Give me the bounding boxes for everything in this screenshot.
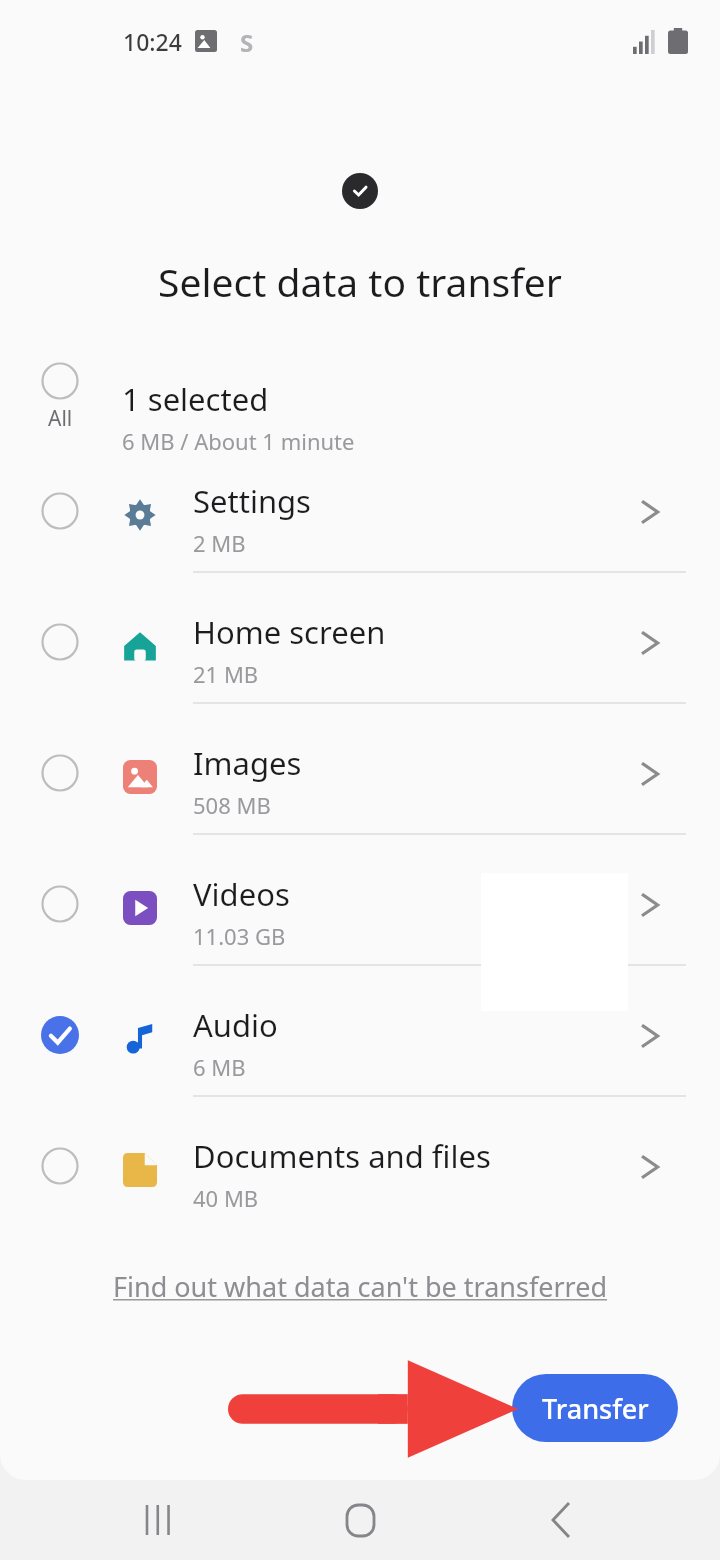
- staticText: Settings: [193, 480, 311, 522]
- staticText: Transfer: [542, 1390, 649, 1427]
- button[interactable]: Transfer: [512, 1374, 678, 1442]
- staticText: Documents and files: [193, 1135, 491, 1177]
- button[interactable]: Find out what data can't be transferred: [105, 1262, 616, 1311]
- button[interactable]: Videos: [0, 863, 720, 994]
- button[interactable]: Back: [519, 1480, 603, 1560]
- button[interactable]: Audio: [0, 994, 720, 1125]
- button[interactable]: Settings: [0, 470, 720, 601]
- button[interactable]: Home screen: [0, 601, 720, 732]
- staticText: 1 selected: [122, 378, 269, 420]
- staticText: S: [240, 26, 254, 59]
- staticText: All: [48, 404, 73, 433]
- button[interactable]: All: [20, 362, 100, 448]
- button[interactable]: Documents and files: [0, 1125, 720, 1256]
- staticText: 40 MB: [193, 1183, 259, 1213]
- button[interactable]: Recent apps: [117, 1480, 201, 1560]
- button[interactable]: Home: [318, 1480, 402, 1560]
- staticText: 508 MB: [193, 790, 271, 820]
- staticText: Find out what data can't be transferred: [113, 1268, 608, 1305]
- staticText: 21 MB: [193, 659, 259, 689]
- staticText: 11.03 GB: [193, 921, 286, 951]
- staticText: Videos: [193, 873, 290, 915]
- staticText: Home screen: [193, 611, 386, 653]
- staticText: 6 MB: [193, 1052, 246, 1082]
- button[interactable]: Images: [0, 732, 720, 863]
- staticText: 6 MB / About 1 minute: [122, 426, 355, 456]
- staticText: Audio: [193, 1004, 278, 1046]
- staticText: 10:24: [123, 26, 182, 57]
- staticText: Select data to transfer: [158, 255, 562, 308]
- staticText: 2 MB: [193, 528, 246, 558]
- staticText: Images: [193, 742, 302, 784]
- other: Arrow pointing at Transfer: [228, 1356, 518, 1462]
